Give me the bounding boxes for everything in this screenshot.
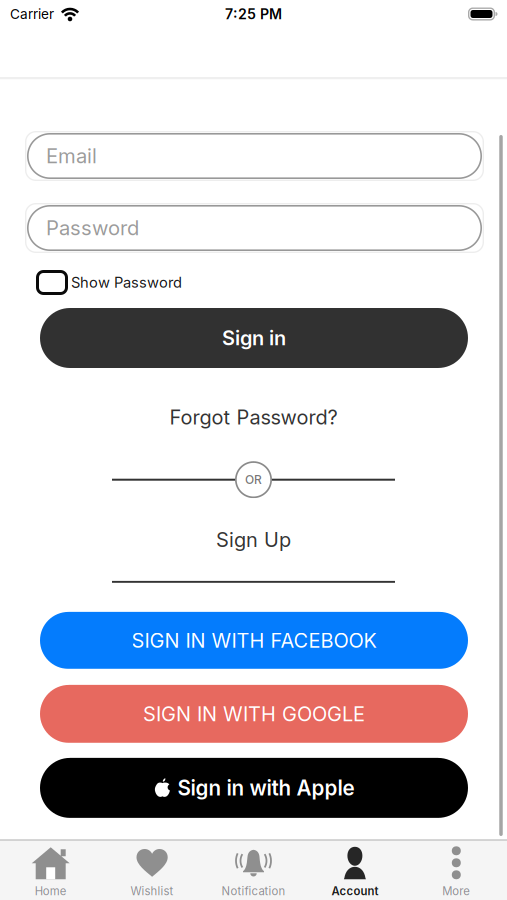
staticText: Notification [221,884,285,898]
staticText: 7:25 PM [225,5,282,22]
staticText: Sign in [222,326,286,350]
button[interactable]: SIGN IN WITH FACEBOOK [0,612,507,669]
button[interactable]: Notification [203,846,304,898]
staticText: SIGN IN WITH FACEBOOK [131,628,376,652]
staticText: SIGN IN WITH GOOGLE [143,702,365,726]
staticText: Carrier [10,6,54,22]
staticText: Account [331,884,378,898]
button[interactable]: SIGN IN WITH GOOGLE [0,685,507,743]
staticText: Wishlist [131,884,174,898]
button[interactable]: Sign in with Apple [0,758,507,818]
staticText: Show Password [71,274,182,291]
button[interactable]: Password [0,203,507,253]
staticText: More [442,884,470,898]
staticText: Email [46,144,97,168]
staticText: Forgot Password? [169,405,337,429]
staticText: Password [46,216,139,240]
button[interactable]: More [406,846,507,898]
button[interactable]: Show Password [0,270,507,295]
button[interactable]: Forgot Password? [169,405,337,429]
button[interactable]: Sign in [0,308,507,368]
button[interactable]: Sign Up [216,528,291,552]
staticText: Sign in with Apple [177,775,354,800]
button[interactable]: Email [0,131,507,181]
staticText: Sign Up [216,528,291,552]
staticText: Home [35,884,67,898]
button[interactable]: Wishlist [101,846,203,898]
staticText: OR [245,472,262,487]
button[interactable]: Account [304,846,406,898]
button[interactable]: Home [0,846,101,898]
